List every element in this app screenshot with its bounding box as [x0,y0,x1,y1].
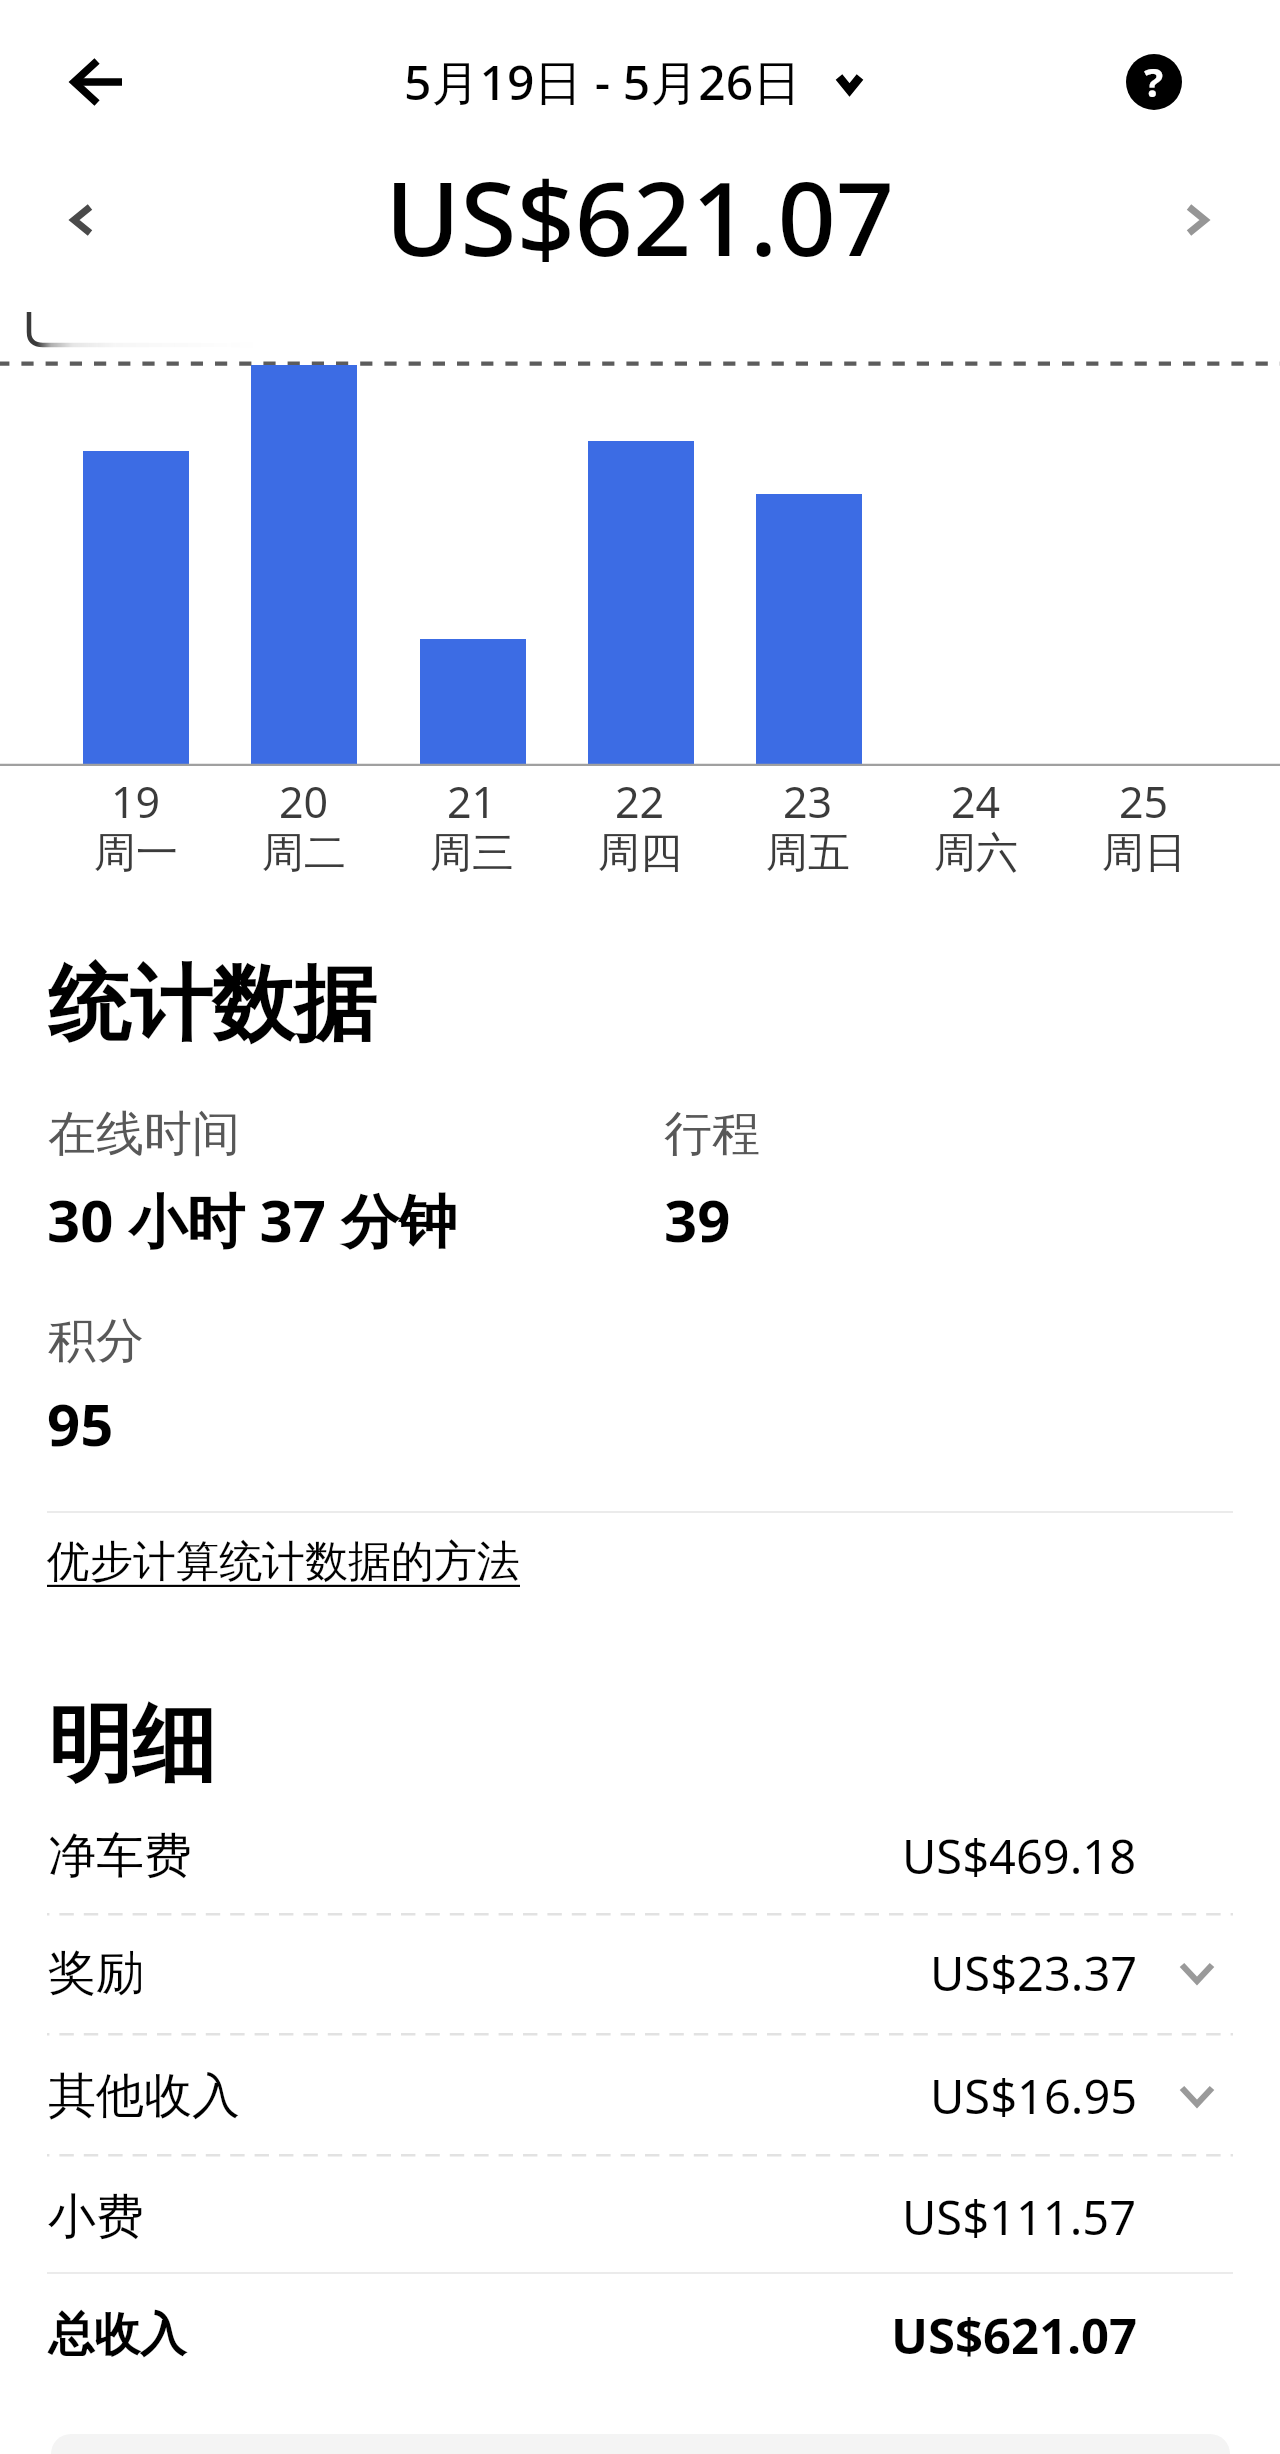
staticText: US$111.57 [902,2185,1137,2249]
staticText: ? [1144,54,1164,108]
button[interactable]: Back [36,22,156,142]
staticText: 周五 [766,827,850,878]
staticText: 周一 [94,827,178,878]
staticText: 21 [447,772,497,831]
button[interactable]: Previous week [22,160,142,280]
staticText: 23 [783,772,833,831]
staticText: 其他收入 [48,2066,240,2126]
staticText: 优步计算统计数据的方法 [47,1535,520,1589]
button[interactable]: 优步计算统计数据的方法 [47,1535,520,1589]
staticText: 周日 [1102,827,1186,878]
staticText: 19 [111,772,161,831]
staticText: 95 [47,1384,114,1463]
button[interactable]: Next week [1137,160,1257,280]
staticText: 在线时间 [48,1104,240,1164]
staticText: 20 [279,772,329,831]
button[interactable]: 净车费 [48,1796,1232,1916]
staticText: 小费 [48,2187,144,2247]
staticText: US$23.37 [930,1941,1138,2005]
staticText: US$16.95 [930,2064,1138,2128]
staticText: US$621.07 [385,147,895,277]
staticText: US$469.18 [902,1824,1137,1888]
staticText: 净车费 [48,1826,192,1886]
staticText: 22 [615,772,665,831]
staticText: 行程 [664,1104,760,1164]
button[interactable]: 奖励 [48,1913,1232,2033]
staticText: 24 [951,772,1001,831]
button[interactable]: 小费 [48,2157,1232,2277]
staticText: 39 [664,1180,731,1259]
staticText: 25 [1119,772,1169,831]
staticText: 周三 [430,827,514,878]
staticText: 明细 [48,1692,216,1798]
staticText: 周二 [262,827,346,878]
staticText: 总收入 [48,2306,186,2364]
staticText: 30 小时 37 分钟 [47,1180,457,1259]
button[interactable]: 总收入 [48,2275,1232,2395]
button[interactable]: 其他收入 [48,2036,1232,2156]
staticText: 5月19日 - 5月26日 [404,49,802,115]
button[interactable]: 5月19日 - 5月26日 [404,49,864,115]
staticText: 积分 [48,1311,144,1371]
staticText: 统计数据 [48,953,376,1056]
button[interactable]: Help [1094,22,1214,142]
staticText: US$621.07 [891,2302,1137,2369]
staticText: 周六 [934,827,1018,878]
staticText: 周四 [598,827,682,878]
staticText: 奖励 [48,1943,144,2003]
